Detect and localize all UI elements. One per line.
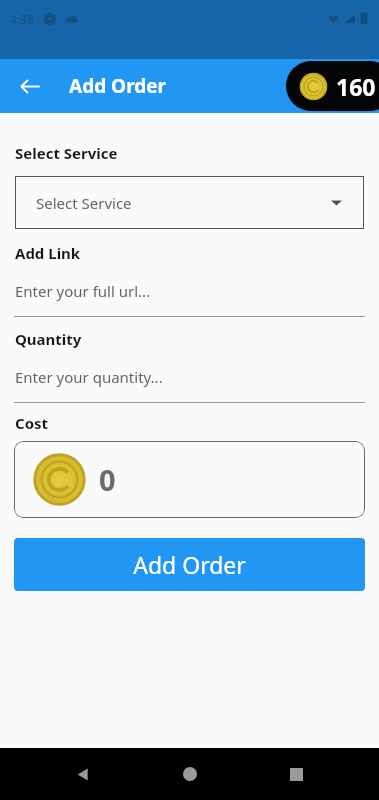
button[interactable]: Recent apps [272, 750, 320, 798]
staticText: 0 [99, 460, 116, 499]
button[interactable]: Enter your full url... [15, 281, 364, 301]
staticText: 160 [336, 71, 376, 102]
button[interactable]: Enter your quantity... [15, 367, 364, 387]
button[interactable]: 0 [14, 441, 365, 518]
staticText: Select Service [36, 193, 132, 213]
staticText: Add Order [69, 73, 167, 99]
button[interactable]: Back [59, 750, 107, 798]
staticText: 4:38 [10, 11, 34, 27]
staticText: Add Link [15, 243, 81, 263]
button[interactable]: 160 [286, 61, 379, 111]
button[interactable]: Select Service [15, 176, 364, 229]
button[interactable]: Add Order [14, 538, 365, 591]
staticText: Enter your full url... [15, 281, 151, 301]
staticText: Cost [15, 413, 49, 433]
staticText: Enter your quantity... [15, 367, 163, 387]
button[interactable]: Back [14, 70, 46, 102]
button[interactable]: Home [166, 750, 214, 798]
staticText: Select Service [15, 143, 118, 163]
staticText: Quantity [15, 329, 82, 349]
staticText: Add Order [133, 549, 246, 580]
